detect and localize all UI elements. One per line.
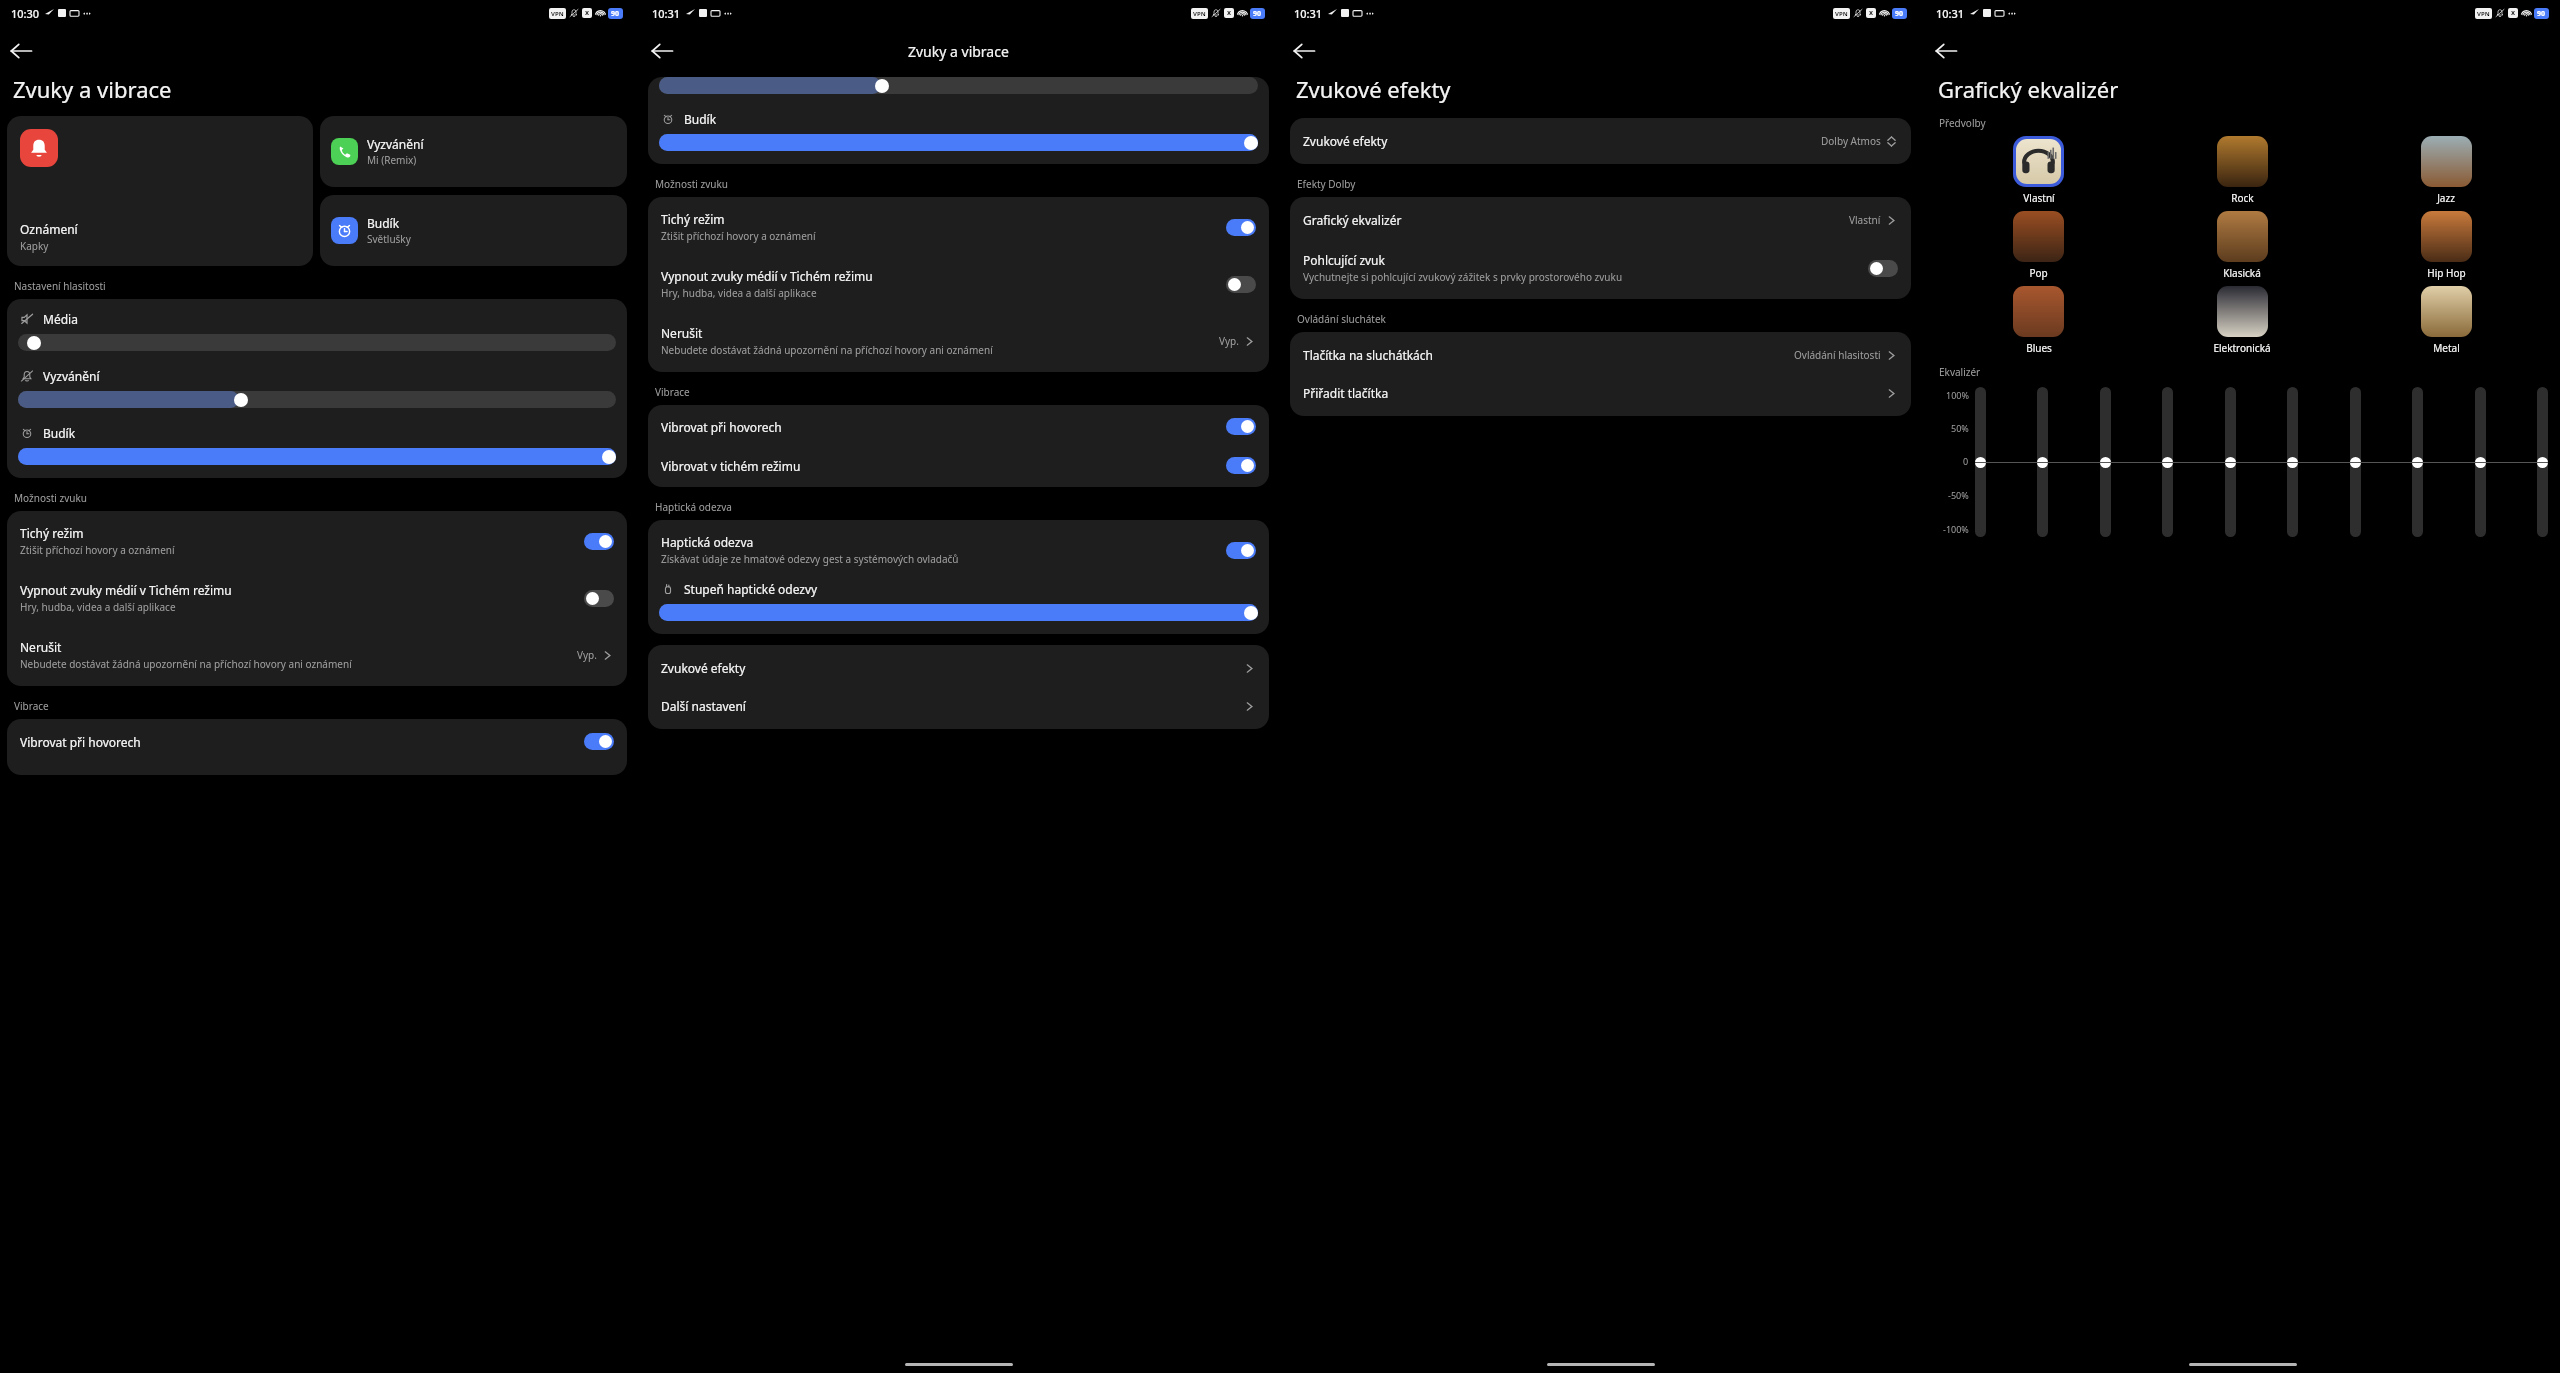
staticText: Nerušit: [661, 325, 703, 341]
button[interactable]: Vyzvánění: [320, 116, 627, 187]
button[interactable]: Vlastní: [1937, 136, 2140, 211]
button[interactable]: [659, 77, 1258, 94]
button[interactable]: Off: [1226, 276, 1256, 293]
staticText: Vlastní: [1849, 213, 1881, 227]
staticText: Možnosti zvuku: [655, 177, 729, 191]
staticText: Stupeň haptické odezvy: [684, 581, 818, 597]
button[interactable]: Band: [2537, 457, 2548, 468]
button[interactable]: Blues: [1937, 286, 2140, 361]
staticText: Vyzvánění: [43, 368, 100, 384]
button[interactable]: Band: [2287, 457, 2298, 468]
staticText: Blues: [2026, 341, 2052, 355]
staticText: Vlastní: [2023, 191, 2055, 205]
button[interactable]: Haptická odezva: [648, 523, 1269, 577]
button[interactable]: [659, 604, 1258, 621]
staticText: 90: [611, 9, 620, 19]
staticText: Kapky: [20, 239, 49, 253]
staticText: Nerušit: [20, 639, 62, 655]
button[interactable]: Vibrovat při hovorech: [7, 722, 627, 761]
staticText: Jazz: [2437, 191, 2455, 205]
button[interactable]: [18, 391, 616, 408]
staticText: Ztišit příchozí hovory a oznámení: [20, 543, 175, 557]
staticText: Vibrovat v tichém režimu: [661, 458, 801, 474]
button[interactable]: Off: [1868, 260, 1898, 277]
staticText: 10:31: [652, 6, 681, 21]
button[interactable]: On: [584, 733, 614, 750]
button[interactable]: Metal: [2344, 286, 2548, 361]
button[interactable]: On: [1226, 457, 1256, 474]
button[interactable]: Vypnout zvuky médií v Tichém režimu: [7, 571, 627, 625]
staticText: Vibrovat při hovorech: [661, 419, 782, 435]
staticText: ···: [1366, 6, 1375, 20]
staticText: Vibrace: [655, 385, 690, 399]
button[interactable]: Band: [2412, 457, 2423, 468]
button[interactable]: On: [584, 533, 614, 550]
staticText: Hry, hudba, videa a další aplikace: [20, 600, 176, 614]
staticText: Mi (Remix): [367, 153, 417, 167]
button[interactable]: Back: [645, 34, 679, 68]
button[interactable]: Tichý režim: [7, 514, 627, 568]
staticText: x: [2511, 8, 2516, 18]
button[interactable]: Zvukové efekty: [1290, 122, 1911, 160]
button[interactable]: Off: [584, 590, 614, 607]
staticText: Vychutnejte si pohlcující zvukový zážite…: [1303, 270, 1623, 284]
staticText: Efekty Dolby: [1297, 177, 1356, 191]
staticText: Předvolby: [1939, 116, 1986, 130]
button[interactable]: Grafický ekvalizér: [1290, 201, 1911, 239]
button[interactable]: Band: [1975, 457, 1986, 468]
button[interactable]: Band: [2475, 457, 2486, 468]
button[interactable]: Vypnout zvuky médií v Tichém režimu: [648, 257, 1269, 311]
button[interactable]: On: [1226, 542, 1256, 559]
button[interactable]: [18, 334, 616, 351]
button[interactable]: [659, 134, 1258, 151]
staticText: Vypnout zvuky médií v Tichém režimu: [661, 268, 873, 284]
staticText: Tichý režim: [20, 525, 84, 541]
staticText: x: [1227, 8, 1232, 18]
staticText: Hip Hop: [2427, 266, 2466, 280]
staticText: ···: [2008, 6, 2017, 20]
staticText: VPN: [1193, 10, 1206, 18]
button[interactable]: Nerušit: [7, 628, 627, 682]
button[interactable]: On: [1226, 219, 1256, 236]
button[interactable]: Pohlcující zvuk: [1290, 241, 1911, 295]
staticText: Média: [43, 311, 78, 327]
button[interactable]: Back: [1287, 34, 1321, 68]
staticText: ···: [83, 6, 92, 20]
staticText: VPN: [551, 10, 564, 18]
button[interactable]: Tichý režim: [648, 200, 1269, 254]
button[interactable]: Přiřadit tlačítka: [1290, 374, 1911, 412]
button[interactable]: Band: [2100, 457, 2111, 468]
button[interactable]: [18, 448, 616, 465]
button[interactable]: Band: [2350, 457, 2361, 468]
button[interactable]: Vibrovat při hovorech: [648, 407, 1269, 446]
button[interactable]: Band: [2225, 457, 2236, 468]
button[interactable]: Tlačítka na sluchátkách: [1290, 336, 1911, 374]
staticText: Vyzvánění: [367, 136, 424, 152]
button[interactable]: Hip Hop: [2344, 211, 2548, 286]
button[interactable]: Klasická: [2140, 211, 2344, 286]
button[interactable]: Back: [1929, 34, 1963, 68]
button[interactable]: Jazz: [2344, 136, 2548, 211]
button[interactable]: Band: [2162, 457, 2173, 468]
staticText: Hry, hudba, videa a další aplikace: [661, 286, 817, 300]
staticText: 10:31: [1936, 6, 1965, 21]
button[interactable]: Band: [2037, 457, 2048, 468]
staticText: -100%: [1943, 523, 1969, 535]
button[interactable]: Pop: [1937, 211, 2140, 286]
staticText: Přiřadit tlačítka: [1303, 385, 1389, 401]
button[interactable]: Elektronická: [2140, 286, 2344, 361]
button[interactable]: Nerušit: [648, 314, 1269, 368]
button[interactable]: Vibrovat v tichém režimu: [648, 446, 1269, 485]
staticText: Budík: [367, 215, 400, 231]
button[interactable]: Back: [4, 34, 38, 68]
staticText: 10:31: [1294, 6, 1323, 21]
button[interactable]: Oznámení: [7, 116, 313, 266]
staticText: Pohlcující zvuk: [1303, 252, 1385, 268]
button[interactable]: Zvukové efekty: [648, 649, 1269, 687]
staticText: Haptická odezva: [661, 534, 754, 550]
button[interactable]: Budík: [320, 195, 627, 266]
button[interactable]: On: [1226, 418, 1256, 435]
button[interactable]: Rock: [2140, 136, 2344, 211]
button[interactable]: Další nastavení: [648, 687, 1269, 725]
staticText: Rock: [2231, 191, 2254, 205]
